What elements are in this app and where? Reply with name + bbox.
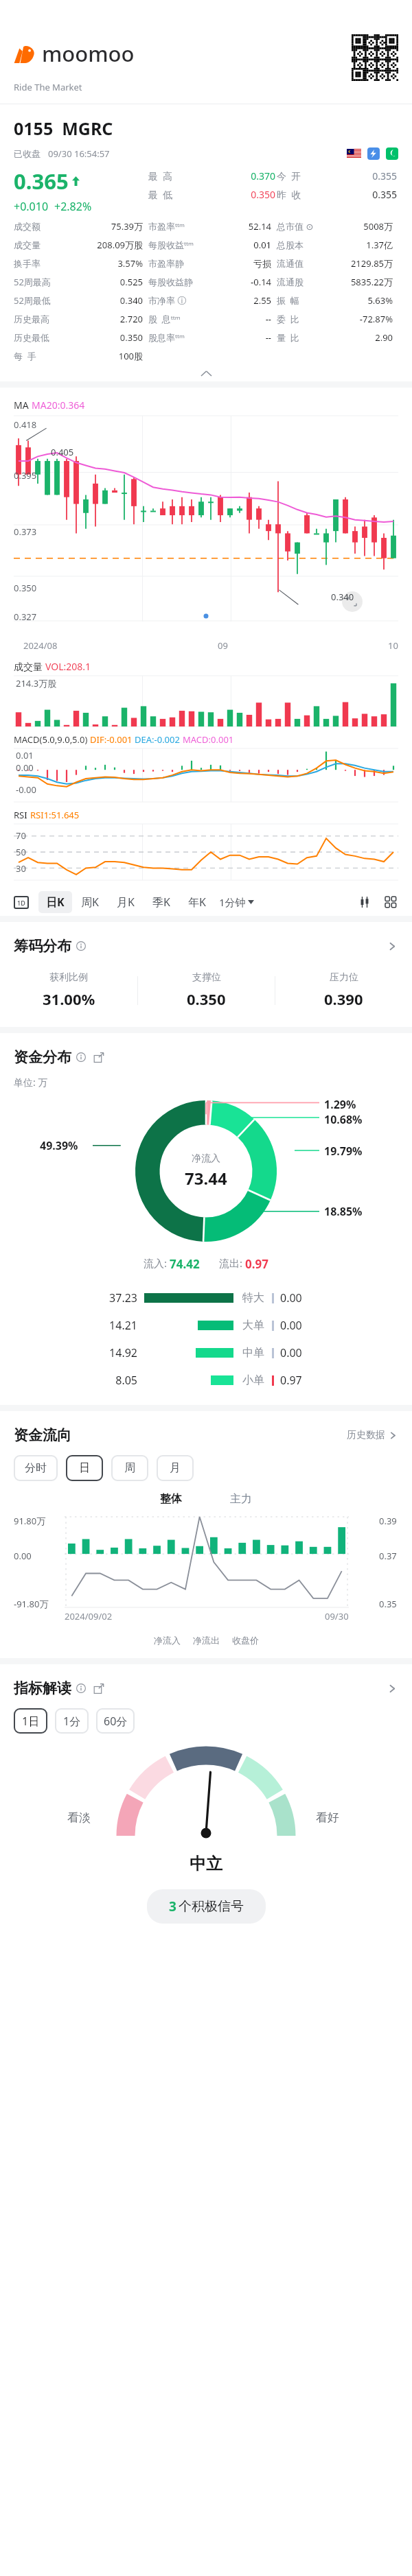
staticText: MACD:0.001 xyxy=(183,733,234,746)
staticText: 最 高 xyxy=(148,169,173,182)
staticText: +2.82% xyxy=(54,199,92,214)
staticText: MA xyxy=(14,399,32,412)
button[interactable]: 日K xyxy=(38,891,72,913)
staticText: 周 xyxy=(124,1461,135,1475)
staticText: 3.57% xyxy=(41,257,143,270)
button[interactable]: 月K xyxy=(108,891,144,913)
button[interactable]: 历史数据 xyxy=(347,1429,398,1441)
button[interactable]: 主力 xyxy=(219,1492,263,1506)
staticText: 大单 xyxy=(242,1319,264,1332)
staticText: 30 xyxy=(16,862,26,875)
staticText: 资金流向 xyxy=(14,1426,71,1444)
staticText: 0.35 xyxy=(379,1598,397,1610)
staticText: 0.39 xyxy=(379,1515,397,1527)
staticText: 2.55 xyxy=(187,294,271,307)
staticText: 0155 MGRC xyxy=(14,117,113,140)
staticText: 特大 xyxy=(242,1291,264,1305)
button[interactable]: 资金分布 xyxy=(14,1048,104,1066)
staticText: 0.350 xyxy=(187,989,226,1009)
staticText: 小单 xyxy=(242,1373,264,1387)
staticText: MA20:0.364 xyxy=(32,399,85,412)
button[interactable]: 60分 xyxy=(96,1708,135,1734)
staticText: 0.350 xyxy=(49,331,143,344)
staticText: 每股收益ᵗᵗᵐ xyxy=(148,239,194,251)
staticText: 收盘价 xyxy=(232,1635,259,1646)
button[interactable]: 1日 xyxy=(14,1708,47,1734)
staticText: 市盈率静 xyxy=(148,258,184,269)
staticText: RSI1:51.645 xyxy=(30,809,80,821)
staticText: 2024/09/02 xyxy=(65,1610,113,1622)
button[interactable]: 筹码分布 detail xyxy=(387,941,398,952)
staticText: 分时 xyxy=(25,1461,47,1475)
staticText: 70 xyxy=(16,829,26,842)
staticText: 每股收益静 xyxy=(148,276,193,287)
button[interactable]: 筹码分布 xyxy=(14,937,86,955)
button[interactable]: 1 Day xyxy=(14,896,29,909)
staticText: 周K xyxy=(81,895,99,910)
staticText: 0.97 xyxy=(280,1373,302,1388)
button[interactable]: 分时 xyxy=(14,1455,58,1481)
staticText: 股 息ᵗᵗᵐ xyxy=(148,313,181,325)
staticText: 资金分布 xyxy=(14,1048,71,1066)
staticText: 100股 xyxy=(36,350,143,362)
staticText: 流入: xyxy=(144,1256,170,1270)
staticText: 14.92 xyxy=(0,1345,137,1360)
button[interactable]: 季K xyxy=(144,891,179,913)
staticText: 整体 xyxy=(160,1492,182,1506)
staticText: 0.00 xyxy=(280,1345,302,1360)
staticText: 最 低 xyxy=(148,188,173,201)
staticText: 1分 xyxy=(63,1714,81,1729)
staticText: -0.00 xyxy=(16,783,36,796)
staticText: 5835.22万 xyxy=(304,276,393,288)
button[interactable]: Collapse details xyxy=(14,365,398,381)
staticText: 0.97 xyxy=(245,1256,268,1272)
button[interactable]: 日 xyxy=(66,1455,103,1481)
staticText: 单位: 万 xyxy=(14,1076,48,1089)
staticText: 1.29% xyxy=(324,1097,356,1112)
staticText: -0.14 xyxy=(193,276,271,288)
button[interactable]: 年K xyxy=(179,891,215,913)
staticText: 成交量 xyxy=(14,660,45,673)
staticText: 0.37 xyxy=(379,1550,397,1562)
button[interactable]: Night mode xyxy=(386,147,398,160)
button[interactable]: Grid layout xyxy=(383,895,398,910)
button[interactable]: 指标解读 xyxy=(14,1679,104,1697)
button[interactable]: Fullscreen chart xyxy=(342,591,363,612)
staticText: 净流入 xyxy=(192,1153,220,1165)
staticText: 个积极信号 xyxy=(179,1898,244,1915)
button[interactable]: Candle type xyxy=(357,895,372,910)
staticText: 09/30 xyxy=(325,1610,349,1622)
button[interactable]: 1分 xyxy=(55,1708,89,1734)
staticText: 每 手 xyxy=(14,350,36,362)
staticText: 0.327 xyxy=(14,611,37,623)
staticText: 亏损 xyxy=(184,258,271,269)
button[interactable]: 整体 xyxy=(149,1492,193,1506)
staticText: 压力位 xyxy=(330,971,358,984)
staticText: 0.355 xyxy=(301,188,397,201)
staticText: 0.340 xyxy=(51,294,143,307)
button[interactable]: 月 xyxy=(157,1455,194,1481)
staticText: 10 xyxy=(388,639,398,652)
staticText: 筹码分布 xyxy=(14,937,71,955)
staticText: 2129.85万 xyxy=(304,257,393,270)
staticText: -- xyxy=(181,313,271,325)
staticText: 已收盘 xyxy=(14,148,41,159)
staticText: 31.00% xyxy=(43,989,95,1009)
button[interactable]: 资金流向 xyxy=(14,1426,71,1444)
button[interactable]: 1分钟 xyxy=(215,895,258,909)
staticText: 0.00 xyxy=(280,1290,302,1305)
staticText: 换手率 xyxy=(14,258,41,269)
staticText: 14.21 xyxy=(0,1318,137,1333)
button[interactable]: 3 xyxy=(147,1889,266,1924)
staticText: 208.09万股 xyxy=(41,239,143,251)
staticText: 2.720 xyxy=(49,313,143,325)
staticText: RSI xyxy=(14,809,30,821)
staticText: 52.14 xyxy=(185,220,271,233)
button[interactable]: 周K xyxy=(72,891,108,913)
button[interactable]: 周 xyxy=(111,1455,148,1481)
staticText: 委 比 xyxy=(277,313,299,325)
staticText: 历史数据 xyxy=(347,1429,385,1441)
button[interactable]: 指标解读 detail xyxy=(387,1683,398,1694)
staticText: 19.79% xyxy=(324,1144,363,1159)
button[interactable]: Zero commission xyxy=(367,147,380,160)
